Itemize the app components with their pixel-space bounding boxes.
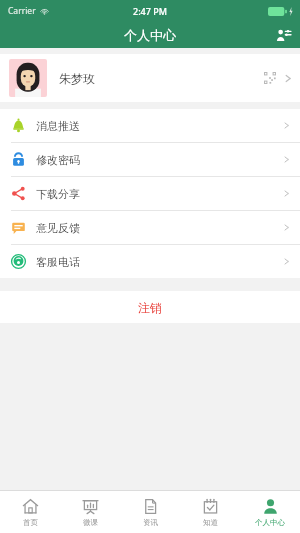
button[interactable]: 朱梦玫: [0, 54, 300, 102]
other: QR code: [264, 72, 276, 84]
staticText: 微课: [83, 518, 98, 527]
button[interactable]: 下载分享: [0, 177, 300, 210]
staticText: 意见反馈: [36, 221, 80, 235]
staticText: 知道: [203, 518, 218, 527]
staticText: 资讯: [143, 518, 158, 527]
staticText: 朱梦玫: [59, 71, 95, 86]
button[interactable]: 微课: [60, 491, 120, 533]
button[interactable]: 知道: [180, 491, 240, 533]
staticText: 客服电话: [36, 255, 80, 269]
button[interactable]: 意见反馈: [0, 211, 300, 244]
button[interactable]: Account settings: [266, 22, 300, 48]
button[interactable]: 首页: [0, 491, 60, 533]
staticText: 消息推送: [36, 119, 80, 133]
staticText: 个人中心: [255, 518, 285, 527]
staticText: 下载分享: [36, 187, 80, 201]
staticText: 2:47 PM: [133, 5, 167, 17]
staticText: 注销: [138, 300, 162, 315]
button[interactable]: 资讯: [120, 491, 180, 533]
button[interactable]: 修改密码: [0, 143, 300, 176]
staticText: 个人中心: [124, 27, 176, 43]
button[interactable]: 消息推送: [0, 109, 300, 142]
staticText: 修改密码: [36, 153, 80, 167]
button[interactable]: 客服电话: [0, 245, 300, 278]
staticText: 首页: [23, 518, 38, 527]
button[interactable]: 个人中心: [240, 491, 300, 533]
staticText: Carrier: [8, 5, 36, 17]
button[interactable]: 注销: [0, 291, 300, 323]
